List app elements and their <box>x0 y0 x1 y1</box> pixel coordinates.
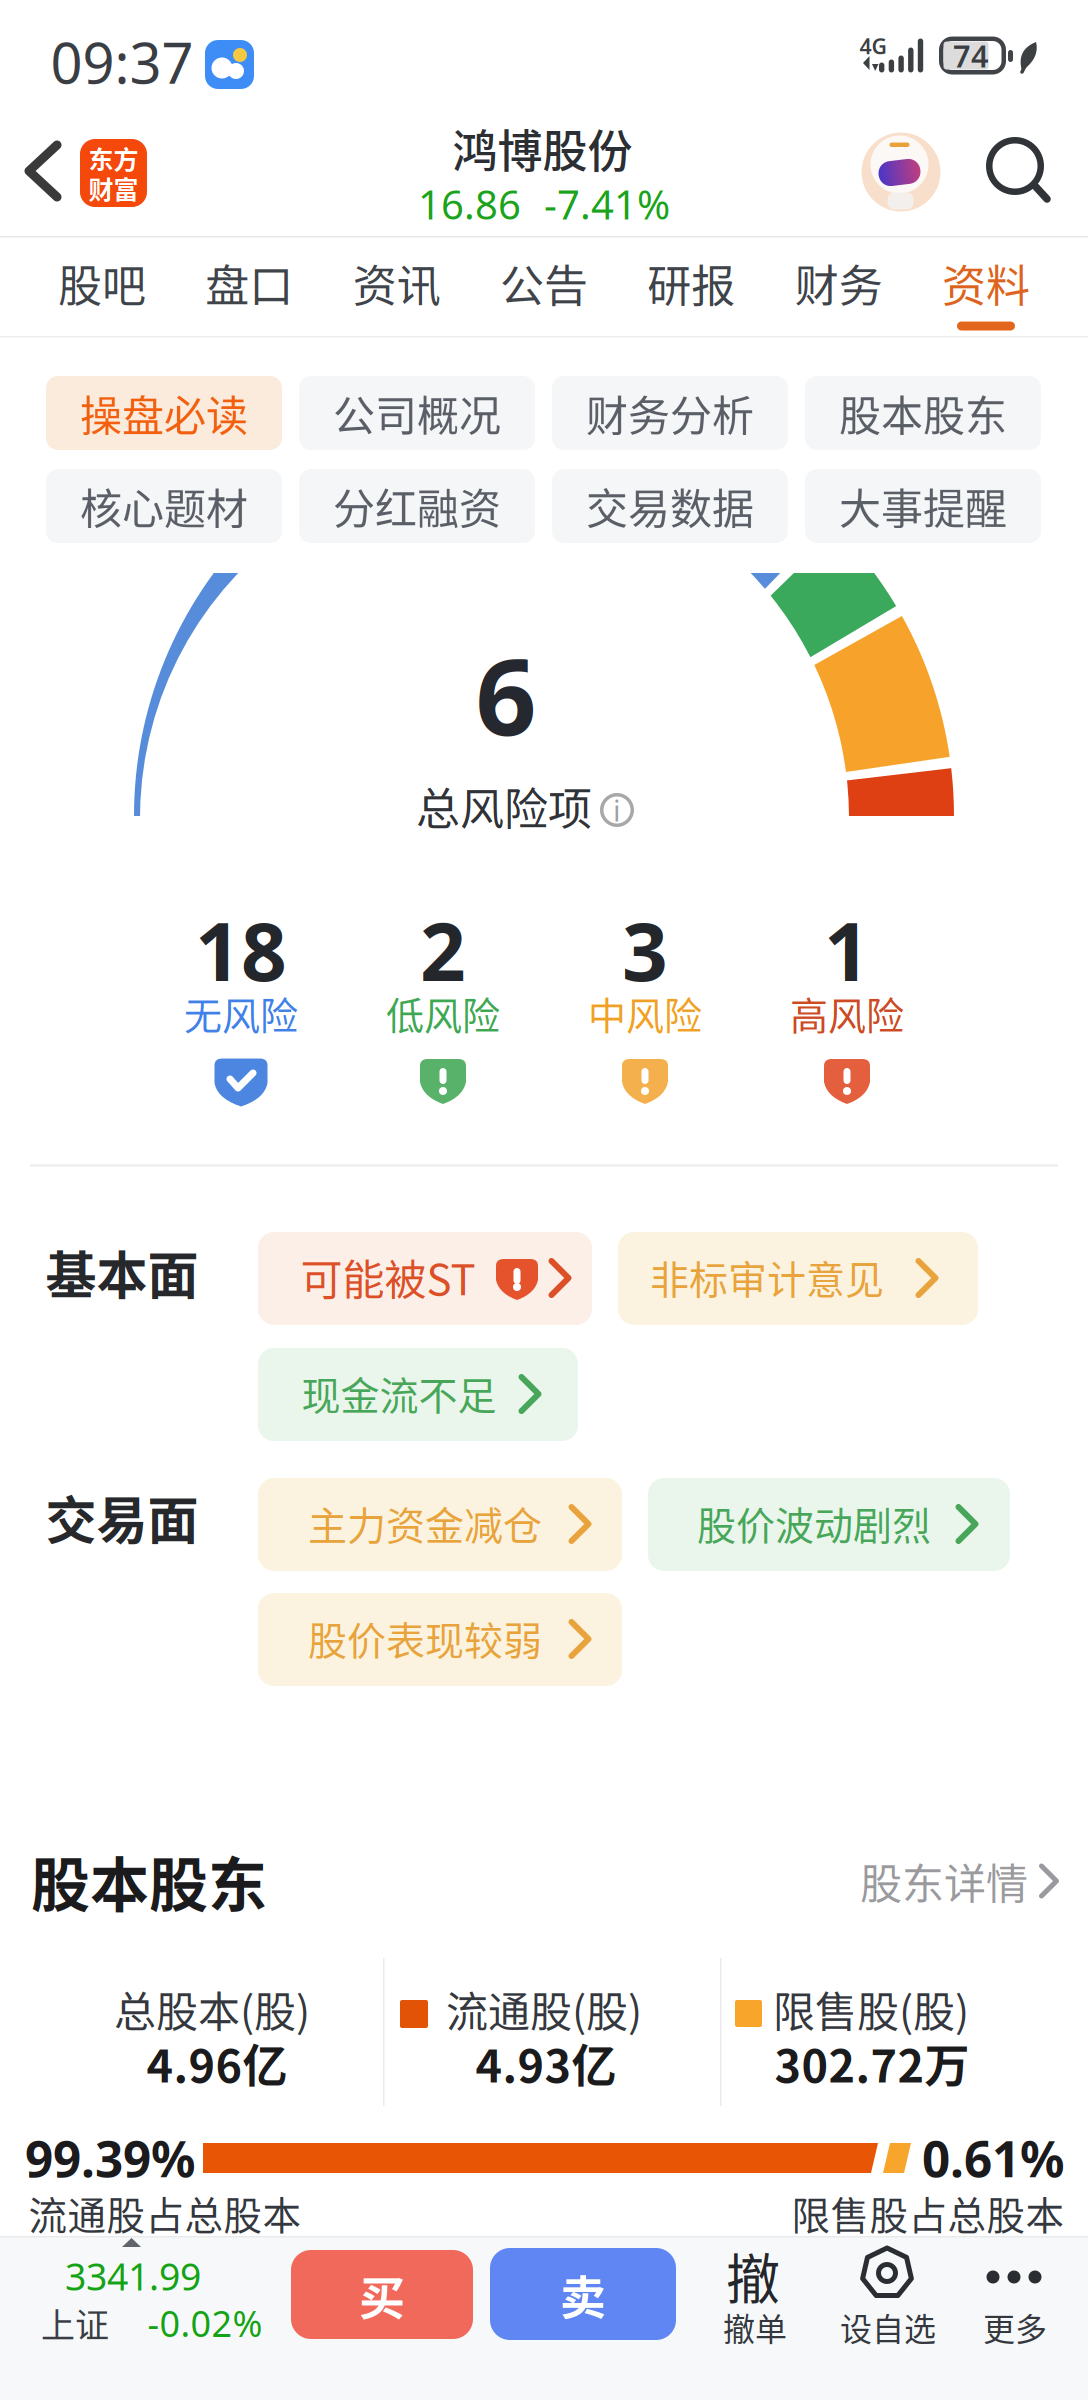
staticText: 财富 <box>88 170 138 206</box>
staticText: 撤单 <box>723 2304 787 2350</box>
staticText: 更多 <box>983 2304 1047 2350</box>
button[interactable]: 公司概况 <box>299 376 535 450</box>
button[interactable]: Search <box>986 139 1050 203</box>
staticText: 高风险 <box>790 985 904 1040</box>
button[interactable]: 股价表现较弱 <box>258 1593 622 1686</box>
staticText: 2 <box>420 897 466 1003</box>
staticText: 股价表现较弱 <box>308 1610 542 1666</box>
button[interactable]: 财务分析 <box>552 376 788 450</box>
button[interactable]: 资讯 <box>353 251 441 315</box>
button[interactable]: 分红融资 <box>299 469 535 543</box>
staticText: 交易数据 <box>586 476 754 536</box>
staticText: 1 <box>824 897 870 1003</box>
staticText: 3341.99 <box>65 2251 201 2301</box>
staticText: 分红融资 <box>333 476 501 536</box>
button[interactable]: 撤 <box>708 2236 798 2356</box>
staticText: 低风险 <box>386 985 500 1040</box>
staticText: 6 <box>475 623 536 765</box>
staticText: 非标审计意见 <box>650 1249 884 1305</box>
button[interactable]: 可能被ST <box>258 1232 592 1325</box>
staticText: 302.72万 <box>774 2030 969 2096</box>
button[interactable]: Back <box>0 0 60 70</box>
button[interactable]: 股东详情 <box>860 1859 1064 1903</box>
staticText: 财务 <box>795 251 883 315</box>
button[interactable]: 现金流不足 <box>258 1348 578 1441</box>
button[interactable]: 大事提醒 <box>805 469 1041 543</box>
staticText: 3 <box>622 897 668 1003</box>
button[interactable]: 非标审计意见 <box>618 1232 978 1325</box>
staticText: 74 <box>953 35 989 76</box>
staticText: i <box>613 790 621 829</box>
button[interactable]: 交易数据 <box>552 469 788 543</box>
staticText: 99.39% <box>25 2125 195 2191</box>
staticText: 4.96亿 <box>146 2030 287 2096</box>
staticText: 16.86 <box>418 177 521 230</box>
button[interactable]: 研报 <box>647 251 735 315</box>
button[interactable]: 核心题材 <box>46 469 282 543</box>
staticText: 买 <box>359 2261 405 2328</box>
button[interactable]: 3341.99 <box>0 2236 270 2400</box>
staticText: 东方 <box>88 140 138 176</box>
staticText: 流通股占总股本 <box>28 2185 301 2241</box>
staticText: 现金流不足 <box>301 1365 496 1421</box>
staticText: 股东详情 <box>860 1851 1028 1911</box>
staticText: 18 <box>195 897 287 1003</box>
staticText: 资料 <box>942 251 1030 315</box>
staticText: 限售股占总股本 <box>791 2185 1064 2241</box>
staticText: 卖 <box>560 2261 606 2327</box>
button[interactable]: 财务 <box>795 251 883 315</box>
staticText: 无风险 <box>184 985 298 1040</box>
staticText: 4G <box>859 32 886 60</box>
staticText: 操盘必读 <box>80 383 248 443</box>
staticText: 交易面 <box>45 1480 198 1554</box>
staticText: 流通股(股) <box>446 1979 642 2039</box>
staticText: 股价波动剧烈 <box>697 1495 931 1551</box>
button[interactable]: 股本股东 <box>805 376 1041 450</box>
button[interactable]: 操盘必读 <box>46 376 282 450</box>
staticText: 股本股东 <box>31 1838 267 1924</box>
staticText: 基本面 <box>45 1235 198 1309</box>
button[interactable]: 总风险项说明 <box>600 793 634 827</box>
staticText: 主力资金减仓 <box>308 1495 542 1551</box>
button[interactable]: 设自选 <box>837 2236 937 2356</box>
staticText: 09:37 <box>50 25 193 99</box>
staticText: 上证 <box>41 2298 109 2348</box>
staticText: -7.41% <box>544 177 670 230</box>
button[interactable]: 股吧 <box>58 251 146 315</box>
button[interactable]: 公告 <box>500 251 588 315</box>
button[interactable]: AI assistant <box>861 132 940 211</box>
staticText: 股本股东 <box>839 383 1007 443</box>
button[interactable]: 盘口 <box>205 251 293 315</box>
staticText: 撤 <box>726 2237 780 2315</box>
staticText: 公司概况 <box>333 383 501 443</box>
staticText: 股吧 <box>58 251 146 315</box>
staticText: 大事提醒 <box>839 476 1007 536</box>
staticText: 财务分析 <box>586 383 754 443</box>
staticText: 研报 <box>647 251 735 315</box>
button[interactable]: 东方财富 <box>80 139 147 207</box>
staticText: 设自选 <box>840 2304 936 2350</box>
button[interactable]: 更多 <box>975 2236 1055 2356</box>
staticText: 总股本(股) <box>114 1979 310 2039</box>
button[interactable]: 主力资金减仓 <box>258 1478 622 1571</box>
button[interactable]: 股价波动剧烈 <box>648 1478 1010 1571</box>
staticText: 公告 <box>500 251 588 315</box>
button[interactable]: 资料 <box>942 251 1030 315</box>
staticText: 资讯 <box>353 251 441 315</box>
staticText: 限售股(股) <box>773 1979 969 2039</box>
button[interactable]: 买 <box>291 2250 473 2339</box>
staticText: 0.61% <box>922 2125 1064 2191</box>
staticText: 中风险 <box>588 985 702 1040</box>
staticText: 盘口 <box>205 251 293 315</box>
staticText: 可能被ST <box>300 1247 475 1307</box>
staticText: 总风险项 <box>416 774 592 838</box>
staticText: -0.02% <box>147 2299 262 2347</box>
staticText: 核心题材 <box>80 476 248 536</box>
staticText: 4.93亿 <box>475 2030 616 2096</box>
staticText: 鸿博股份 <box>452 116 632 181</box>
button[interactable]: 卖 <box>490 2248 676 2340</box>
